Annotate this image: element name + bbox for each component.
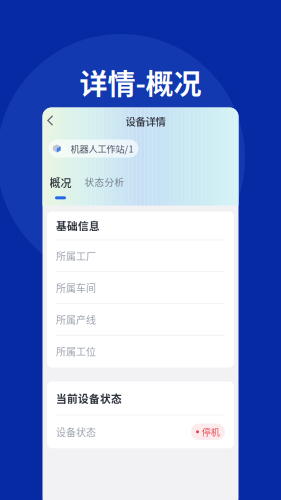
staticText: 详情-概况	[79, 62, 201, 102]
staticText: 基础信息	[56, 218, 100, 233]
staticText: 概况	[49, 174, 71, 190]
button[interactable]: 状态分析	[84, 174, 124, 197]
button[interactable]: 机器人工作站/1	[48, 139, 138, 157]
staticText: 设备状态	[56, 425, 96, 439]
staticText: 所属工位	[56, 344, 96, 358]
button[interactable]: 概况	[49, 174, 71, 199]
button[interactable]: 所属工厂	[47, 240, 234, 272]
staticText: 机器人工作站/1	[70, 142, 133, 155]
staticText: 所属产线	[56, 312, 96, 327]
button[interactable]: 所属车间	[47, 272, 234, 304]
staticText: 当前设备状态	[56, 390, 122, 406]
staticText: 所属车间	[56, 280, 96, 295]
button[interactable]: 所属产线	[47, 304, 234, 336]
staticText: 停机	[202, 425, 220, 438]
staticText: 所属工厂	[56, 249, 96, 263]
button[interactable]: 所属工位	[47, 336, 234, 367]
button[interactable]: Back	[43, 111, 58, 130]
staticText: 状态分析	[84, 174, 124, 188]
staticText: 设备详情	[125, 113, 165, 129]
